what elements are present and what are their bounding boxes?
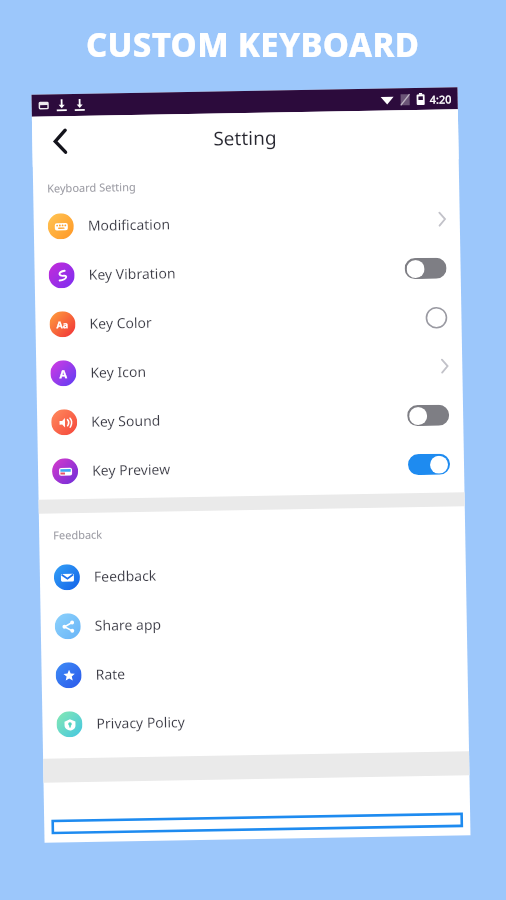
staticText: Rate: [95, 664, 126, 684]
button[interactable]: Key Vibration: [34, 243, 461, 300]
button[interactable]: [407, 404, 449, 426]
staticText: Key Sound: [91, 411, 161, 431]
button[interactable]: Privacy Policy: [42, 692, 469, 749]
button[interactable]: [404, 258, 447, 279]
staticText: Feedback: [53, 527, 102, 542]
staticText: Keyboard Setting: [47, 179, 136, 196]
button[interactable]: [408, 453, 450, 475]
button[interactable]: Rate: [41, 643, 468, 700]
staticText: CUSTOM KEYBOARD: [86, 22, 420, 67]
button[interactable]: Modification: [33, 194, 460, 251]
staticText: Privacy Policy: [96, 712, 186, 733]
staticText: Setting: [213, 124, 277, 152]
staticText: Key Vibration: [88, 263, 176, 284]
button[interactable]: Key Preview: [38, 439, 464, 496]
staticText: Key Icon: [90, 362, 146, 382]
staticText: Feedback: [94, 566, 157, 586]
button[interactable]: Key Sound: [37, 390, 464, 447]
button[interactable]: Aa: [35, 292, 462, 349]
button[interactable]: Back: [40, 121, 81, 162]
staticText: Modification: [88, 214, 171, 235]
button[interactable]: A: [36, 341, 463, 398]
staticText: 4:20: [429, 91, 452, 107]
staticText: Key Color: [89, 313, 153, 333]
button[interactable]: Feedback: [39, 545, 466, 602]
staticText: Share app: [95, 615, 162, 635]
button[interactable]: Share app: [40, 594, 467, 651]
staticText: Aa: [56, 318, 69, 330]
staticText: Key Preview: [92, 459, 170, 480]
staticText: A: [59, 366, 67, 381]
